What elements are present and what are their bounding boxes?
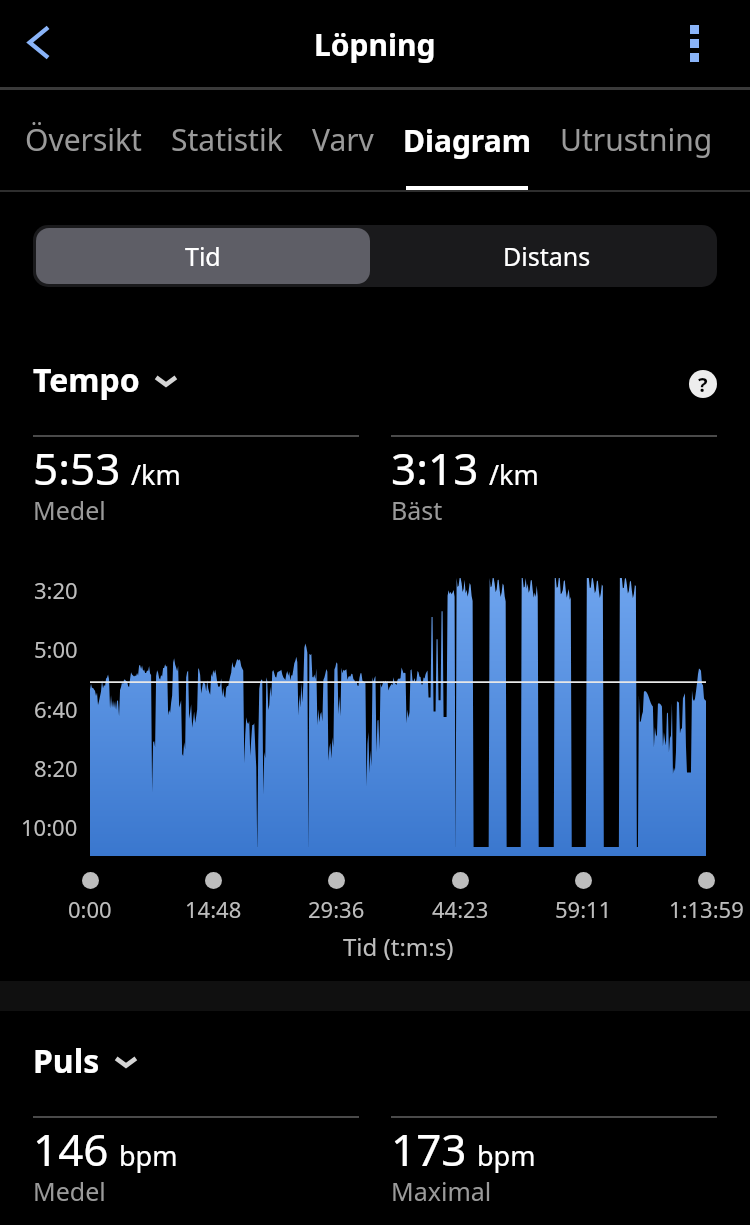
staticText: Puls <box>33 1039 100 1083</box>
button[interactable]: Diagram <box>403 91 531 191</box>
staticText: /km <box>489 456 539 493</box>
staticText: bpm <box>119 1137 178 1174</box>
staticText: 10:00 <box>21 812 78 842</box>
staticText: Löpning <box>314 24 436 65</box>
button[interactable]: Översikt <box>25 91 142 191</box>
staticText: /km <box>131 456 181 493</box>
staticText: 5:00 <box>34 634 78 664</box>
staticText: Distans <box>503 239 591 273</box>
button[interactable]: Puls <box>33 1039 139 1083</box>
staticText: 14:48 <box>185 894 242 924</box>
staticText: Medel <box>33 1174 106 1208</box>
button[interactable]: Tempo <box>33 358 179 402</box>
staticText: Tempo <box>33 358 140 402</box>
staticText: Diagram <box>403 120 531 161</box>
staticText: Bäst <box>391 493 443 527</box>
staticText: 1:13:59 <box>669 894 744 924</box>
staticText: Utrustning <box>560 119 713 160</box>
button[interactable]: Statistik <box>171 91 283 191</box>
staticText: Statistik <box>171 119 283 160</box>
button[interactable]: Utrustning <box>560 91 713 191</box>
button[interactable]: Help <box>685 366 721 402</box>
staticText: 8:20 <box>34 753 78 783</box>
staticText: Medel <box>33 493 106 527</box>
staticText: Varv <box>312 119 374 160</box>
button[interactable]: Distans <box>370 228 714 284</box>
staticText: 0:00 <box>68 894 112 924</box>
staticText: 59:11 <box>555 894 612 924</box>
staticText: 146 <box>33 1119 109 1179</box>
staticText: Tid <box>185 239 221 273</box>
staticText: ? <box>698 371 708 398</box>
button[interactable]: Back <box>10 14 72 76</box>
staticText: Tid (t:m:s) <box>343 930 454 963</box>
staticText: 3:13 <box>391 438 479 498</box>
staticText: 29:36 <box>308 894 365 924</box>
staticText: 6:40 <box>34 694 78 724</box>
staticText: bpm <box>477 1137 536 1174</box>
staticText: 5:53 <box>33 438 121 498</box>
staticText: Maximal <box>391 1174 492 1208</box>
staticText: 3:20 <box>34 575 78 605</box>
button[interactable]: More options <box>663 14 725 76</box>
staticText: 173 <box>391 1119 467 1179</box>
staticText: Översikt <box>25 119 142 160</box>
staticText: 44:23 <box>432 894 489 924</box>
button[interactable]: Tid <box>36 228 370 284</box>
button[interactable]: Varv <box>312 91 374 191</box>
